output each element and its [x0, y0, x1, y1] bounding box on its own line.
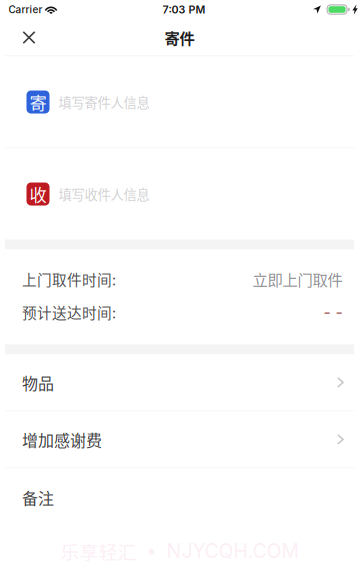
- staticText: 预计送达时间:: [22, 301, 116, 323]
- staticText: 增加感谢费: [22, 428, 102, 451]
- staticText: 乐享轻汇: [60, 537, 136, 564]
- button[interactable]: 备注: [0, 468, 359, 526]
- staticText: 填写收件人信息: [58, 184, 149, 204]
- staticText: 7:03 PM: [162, 3, 205, 16]
- staticText: 寄: [29, 89, 46, 115]
- staticText: Carrier: [8, 3, 42, 16]
- staticText: 物品: [22, 371, 54, 394]
- button[interactable]: 填写寄件人信息: [0, 56, 359, 147]
- staticText: 填写寄件人信息: [58, 92, 149, 112]
- button[interactable]: Close: [0, 19, 58, 55]
- staticText: 立即上门取件: [252, 268, 342, 290]
- staticText: 备注: [22, 486, 54, 509]
- button[interactable]: 填写收件人信息: [0, 148, 359, 239]
- staticText: NJYCQH.COM: [166, 539, 298, 563]
- staticText: 上门取件时间:: [22, 268, 116, 290]
- staticText: 寄件: [164, 26, 194, 49]
- button[interactable]: 物品: [0, 354, 359, 410]
- staticText: 收: [29, 181, 46, 207]
- staticText: - -: [323, 302, 342, 322]
- button[interactable]: 增加感谢费: [0, 411, 359, 467]
